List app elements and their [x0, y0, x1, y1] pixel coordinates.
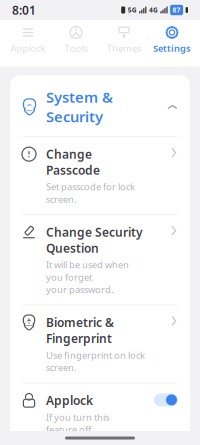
staticText: Settings — [153, 42, 191, 54]
staticText: Use fingerprint on lock screen. — [46, 349, 145, 374]
staticText: Themes — [107, 42, 141, 54]
button[interactable]: Tools — [52, 22, 100, 58]
button[interactable]: Change Security Question — [10, 215, 190, 305]
staticText: Change Security Question — [46, 224, 143, 256]
button[interactable]: Applock — [4, 22, 52, 58]
staticText: 4G — [149, 6, 158, 14]
button[interactable]: Change Passcode — [10, 137, 190, 214]
button[interactable]: Biometric & Fingerprint — [10, 305, 190, 383]
button[interactable]: System & Security — [10, 75, 190, 136]
staticText: System & Security — [46, 87, 113, 126]
staticText: 5G — [128, 6, 137, 14]
staticText: Applock — [10, 42, 45, 54]
staticText: Applock — [46, 392, 93, 408]
staticText: Change Passcode — [46, 146, 100, 178]
staticText: 87 — [173, 6, 181, 14]
staticText: 8:01 — [12, 2, 36, 18]
button[interactable]: Applock — [10, 383, 190, 445]
staticText: If you turn this feature off, Applock wi… — [46, 411, 109, 445]
staticText: Tools — [64, 42, 87, 54]
button[interactable]: Themes — [100, 22, 148, 58]
staticText: It will be used when you forget your pas… — [46, 258, 129, 296]
staticText: Biometric & Fingerprint — [46, 314, 114, 346]
button[interactable]: Settings — [148, 22, 196, 58]
staticText: Set passcode for lock screen. — [46, 180, 135, 205]
